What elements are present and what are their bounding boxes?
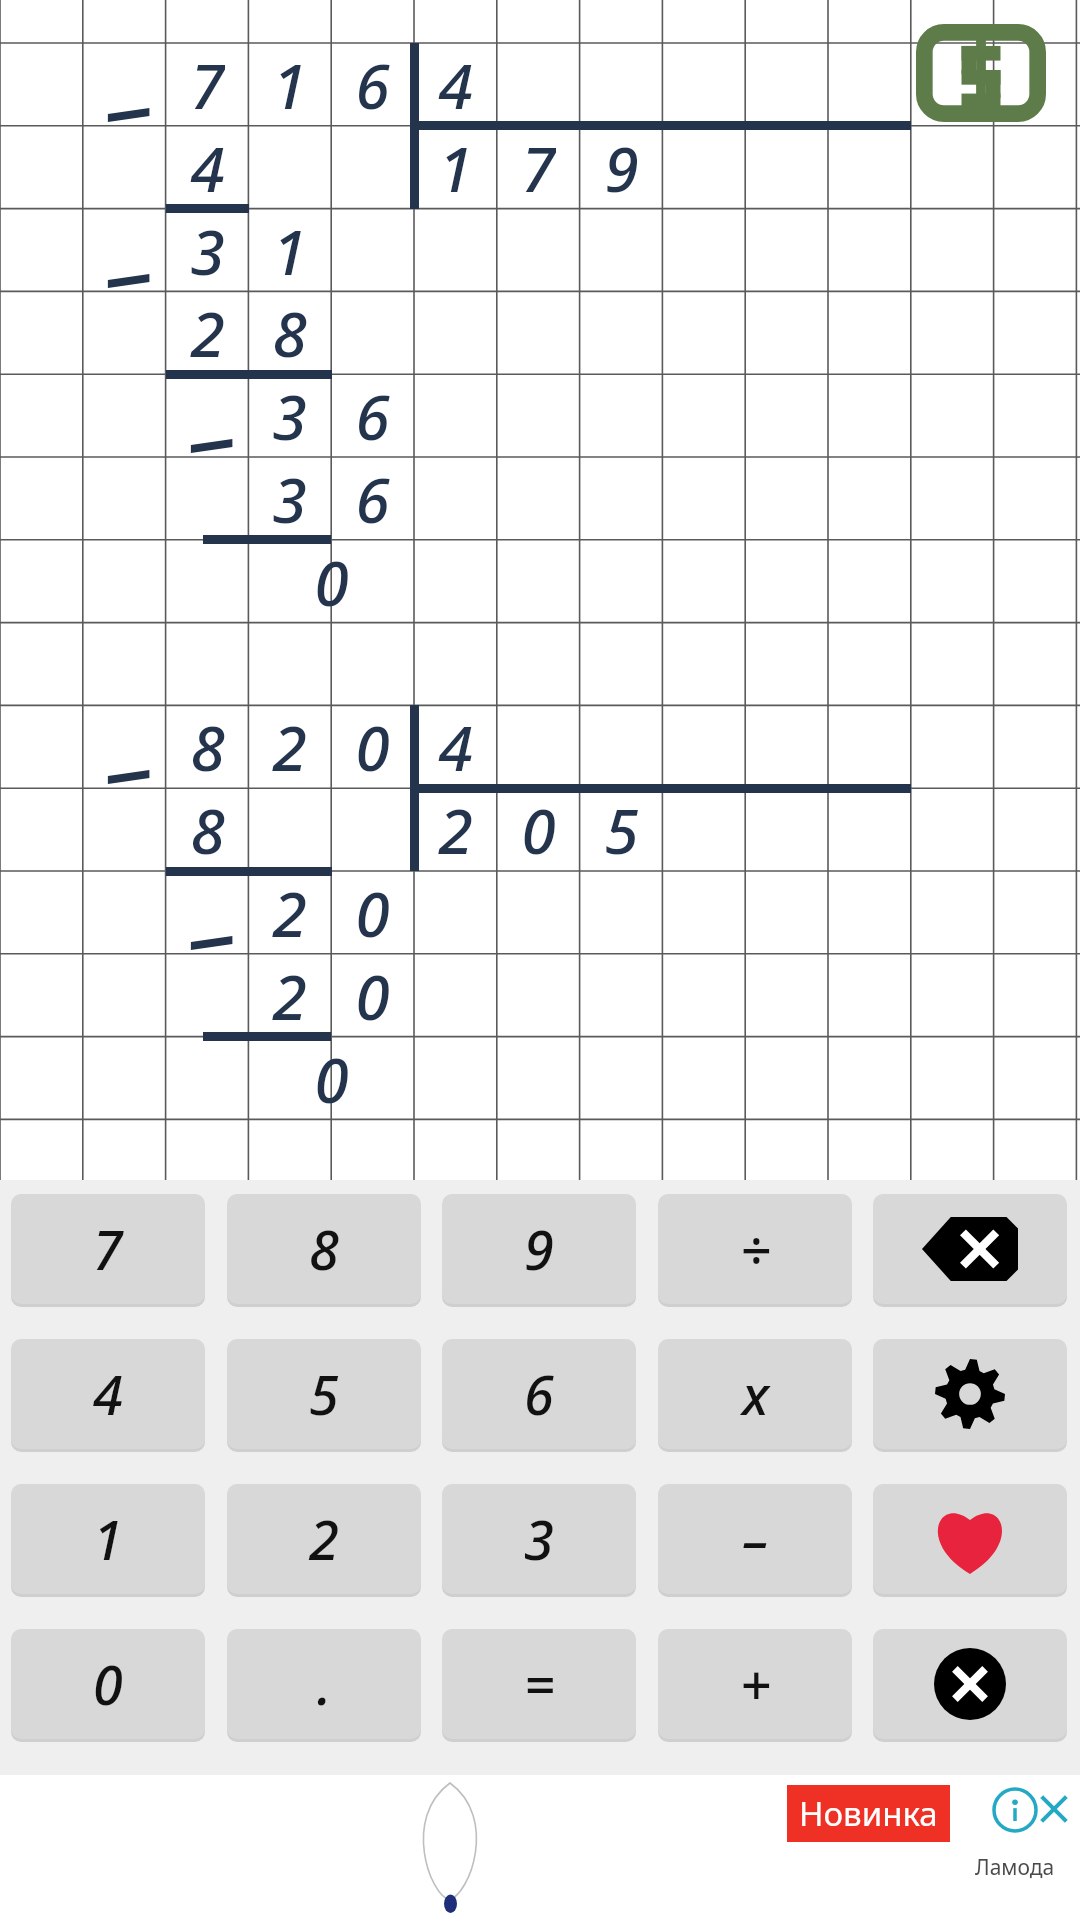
button[interactable]: 5: [227, 1339, 421, 1449]
staticText: 7: [93, 1212, 123, 1286]
staticText: +: [740, 1647, 771, 1721]
button[interactable]: ÷: [658, 1194, 852, 1304]
button[interactable]: 2: [227, 1484, 421, 1594]
staticText: 6: [355, 374, 390, 457]
staticText: 6: [524, 1357, 554, 1431]
button[interactable]: Settings: [873, 1339, 1067, 1449]
staticText: 0: [314, 540, 349, 623]
staticText: 4: [438, 43, 473, 126]
button[interactable]: 0: [11, 1629, 205, 1739]
staticText: 0: [355, 871, 390, 954]
button[interactable]: 8: [227, 1194, 421, 1304]
staticText: 9: [604, 126, 639, 209]
button[interactable]: 1: [11, 1484, 205, 1594]
staticText: 3: [272, 374, 307, 457]
staticText: 3: [190, 209, 225, 292]
button[interactable]: .: [227, 1629, 421, 1739]
staticText: 4: [438, 705, 473, 788]
button[interactable]: 3: [442, 1484, 636, 1594]
staticText: Ламода: [975, 1853, 1055, 1882]
staticText: 2: [309, 1502, 339, 1576]
button[interactable]: 4: [11, 1339, 205, 1449]
staticText: 2: [272, 954, 307, 1037]
button[interactable]: Close ad: [1032, 1787, 1076, 1831]
staticText: 5: [604, 788, 639, 871]
staticText: 4: [190, 126, 225, 209]
staticText: 0: [355, 954, 390, 1037]
staticText: 0: [521, 788, 556, 871]
button[interactable]: Новинка: [0, 1775, 1080, 1920]
staticText: 1: [93, 1502, 123, 1576]
button[interactable]: Remove ads: [916, 24, 1046, 122]
staticText: 3: [272, 457, 307, 540]
staticText: 0: [314, 1037, 349, 1120]
button[interactable]: +: [658, 1629, 852, 1739]
staticText: –: [742, 1502, 768, 1576]
staticText: 8: [309, 1212, 339, 1286]
staticText: 2: [438, 788, 473, 871]
staticText: 7: [521, 126, 556, 209]
staticText: ÷: [740, 1212, 771, 1286]
button[interactable]: Clear all: [873, 1629, 1067, 1739]
staticText: 6: [355, 43, 390, 126]
button[interactable]: x: [658, 1339, 852, 1449]
staticText: 0: [93, 1647, 123, 1721]
staticText: x: [742, 1357, 769, 1431]
staticText: 2: [272, 705, 307, 788]
staticText: 0: [355, 705, 390, 788]
staticText: 5: [309, 1357, 339, 1431]
button[interactable]: 9: [442, 1194, 636, 1304]
staticText: 8: [190, 788, 225, 871]
button[interactable]: 6: [442, 1339, 636, 1449]
staticText: 1: [272, 209, 307, 292]
staticText: 2: [272, 871, 307, 954]
button[interactable]: Backspace: [873, 1194, 1067, 1304]
staticText: =: [524, 1647, 555, 1721]
button[interactable]: 7: [11, 1194, 205, 1304]
staticText: 8: [272, 291, 307, 374]
button[interactable]: =: [442, 1629, 636, 1739]
staticText: 4: [93, 1357, 123, 1431]
button[interactable]: Favorite: [873, 1484, 1067, 1594]
staticText: 1: [272, 43, 307, 126]
staticText: 2: [190, 291, 225, 374]
staticText: 1: [438, 126, 473, 209]
staticText: 8: [190, 705, 225, 788]
staticText: 7: [190, 43, 225, 126]
staticText: Новинка: [799, 1791, 938, 1836]
staticText: 9: [524, 1212, 554, 1286]
button[interactable]: –: [658, 1484, 852, 1594]
button[interactable]: Ad information: [992, 1787, 1038, 1833]
staticText: 6: [355, 457, 390, 540]
staticText: .: [317, 1647, 332, 1721]
staticText: 3: [524, 1502, 554, 1576]
